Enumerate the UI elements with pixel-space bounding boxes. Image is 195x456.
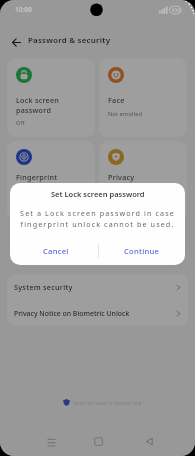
button[interactable] <box>145 437 154 446</box>
staticText: 10:00 <box>15 5 32 14</box>
staticText: Your privacy is protected <box>73 399 142 407</box>
staticText: Cancel <box>43 246 69 256</box>
button[interactable] <box>47 438 56 447</box>
staticText: Set Lock screen password <box>51 189 145 199</box>
staticText: Set a Lock screen password in case finge… <box>20 208 175 229</box>
button[interactable] <box>12 38 21 47</box>
staticText: Lock screen <box>16 95 60 105</box>
button[interactable]: Face <box>99 58 187 137</box>
button[interactable] <box>94 437 103 446</box>
staticText: Not enrolled <box>108 110 142 118</box>
button[interactable]: Privacy Notice on Biometric Unlock <box>7 300 188 326</box>
staticText: Privacy <box>108 172 135 182</box>
button[interactable]: Privacy <box>99 141 187 220</box>
button[interactable]: System security <box>7 274 188 300</box>
staticText: Fingerprint <box>16 172 58 182</box>
staticText: Face <box>108 95 125 105</box>
button[interactable]: Continue <box>99 236 185 265</box>
staticText: System security <box>14 282 73 292</box>
staticText: Off <box>16 119 25 127</box>
staticText: password <box>16 105 52 115</box>
button[interactable]: Cancel <box>13 236 98 265</box>
staticText: Privacy Notice on Biometric Unlock <box>14 309 130 318</box>
button[interactable]: Fingerprint <box>7 141 95 220</box>
staticText: Continue <box>124 246 160 256</box>
staticText: Password & security <box>28 35 111 46</box>
button[interactable]: Lock screen <box>7 58 95 137</box>
